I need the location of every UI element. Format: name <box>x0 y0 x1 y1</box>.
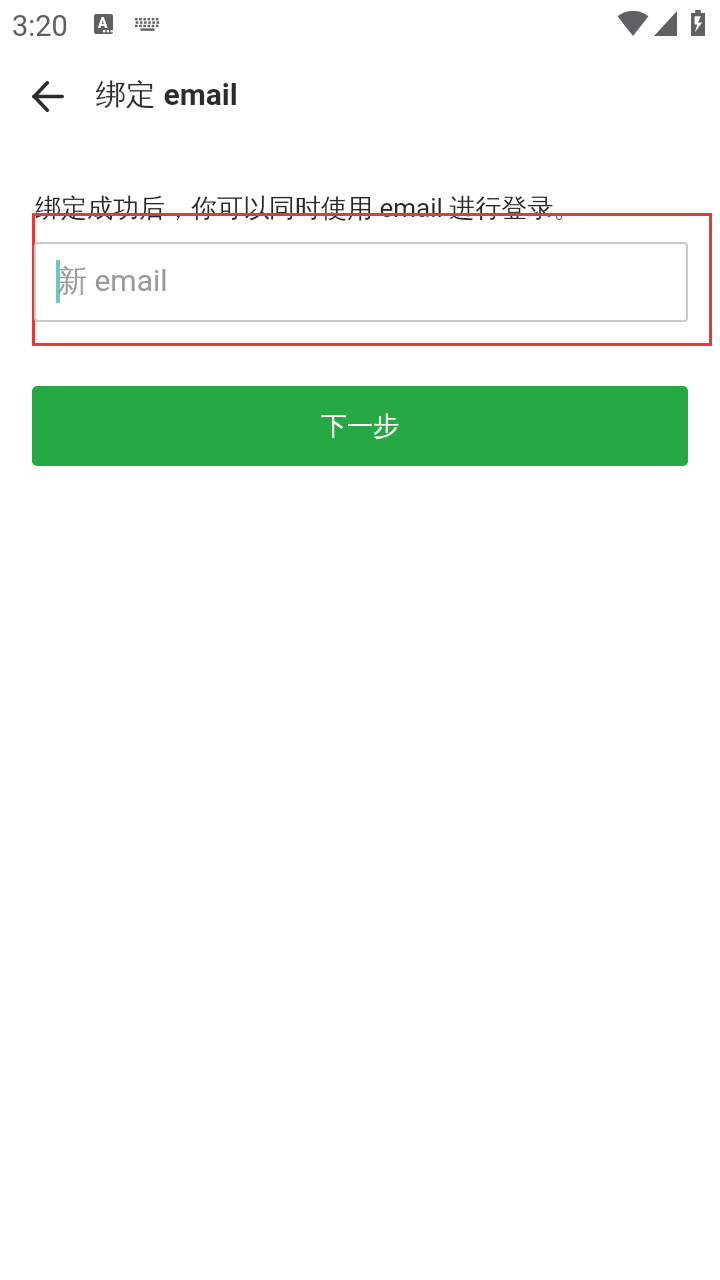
staticText: 下一步 <box>321 410 399 443</box>
staticText: 绑定成功后，你可以同时使用 email 进行登录。 <box>35 192 580 225</box>
staticText: 3:20 <box>12 9 68 43</box>
button[interactable]: Back <box>20 68 76 124</box>
button[interactable]: 下一步 <box>32 386 688 466</box>
staticText: 新 email <box>57 262 168 300</box>
button[interactable]: 新 email <box>34 242 688 322</box>
staticText: 绑定 email <box>96 76 238 114</box>
staticText: A <box>98 15 108 31</box>
